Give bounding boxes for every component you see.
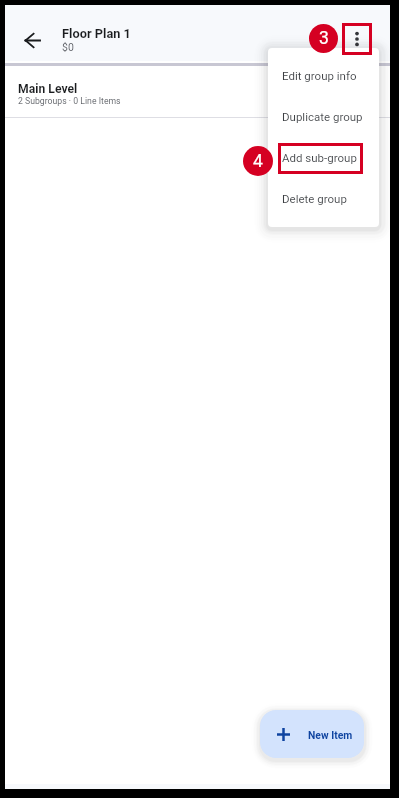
- staticText: Add sub-group: [282, 151, 357, 164]
- button[interactable]: Back: [15, 23, 49, 57]
- staticText: New Item: [308, 729, 353, 741]
- staticText: $0: [62, 41, 74, 53]
- staticText: Edit group info: [282, 69, 357, 82]
- staticText: Duplicate group: [282, 110, 363, 123]
- staticText: 4: [253, 151, 263, 172]
- staticText: Floor Plan 1: [62, 26, 131, 41]
- staticText: Delete group: [282, 192, 347, 205]
- staticText: Main Level: [18, 82, 78, 96]
- button[interactable]: Delete group: [268, 186, 379, 210]
- button[interactable]: Edit group info: [268, 63, 379, 87]
- button[interactable]: New Item: [260, 710, 364, 758]
- staticText: 2 Subgroups · 0 Line Items: [18, 96, 121, 106]
- button[interactable]: Duplicate group: [268, 104, 379, 128]
- button[interactable]: Add sub-group: [268, 145, 379, 169]
- button[interactable]: More options: [339, 21, 375, 57]
- staticText: 3: [319, 28, 329, 49]
- button[interactable]: Main Level: [5, 66, 390, 117]
